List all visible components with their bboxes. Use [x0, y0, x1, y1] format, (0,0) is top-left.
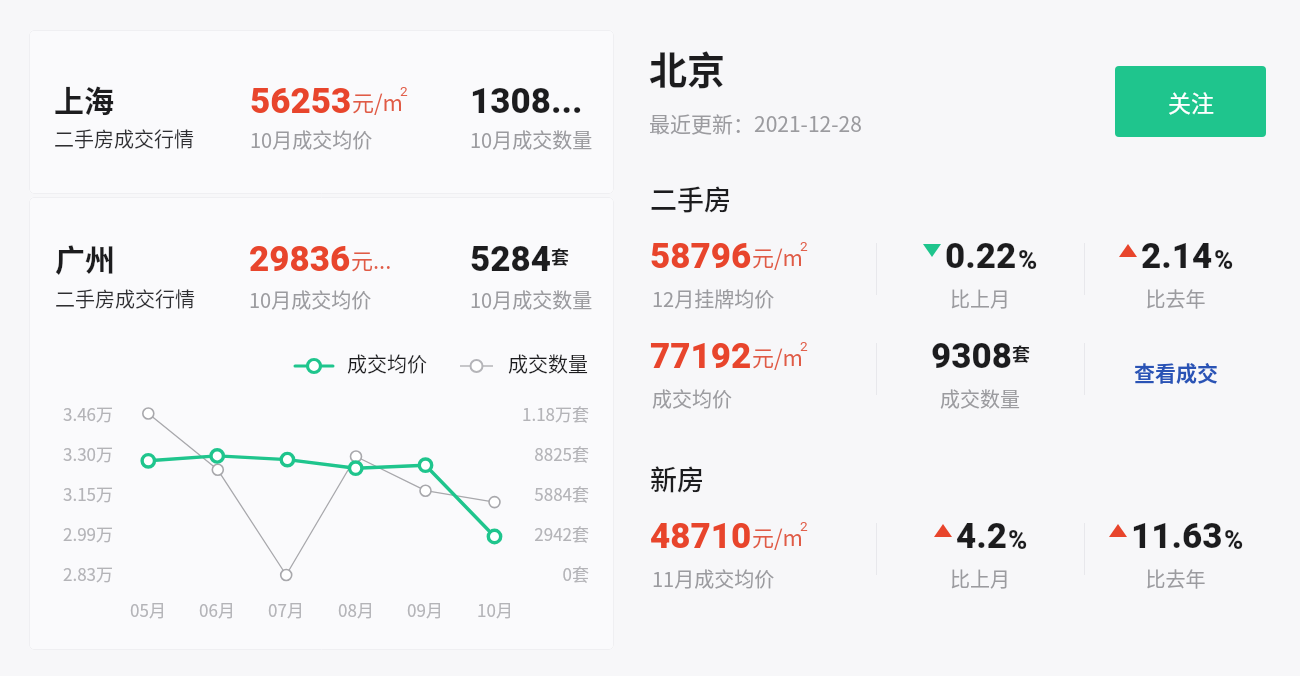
staticText: 二手房	[650, 179, 731, 218]
staticText: 上海	[54, 77, 114, 120]
staticText: 套	[551, 243, 569, 269]
staticText: 10月成交数量	[470, 285, 593, 314]
staticText: 2	[400, 82, 408, 102]
staticText: 12月挂牌均价	[652, 284, 775, 313]
staticText: 比去年	[1084, 284, 1267, 313]
staticText: 成交均价	[347, 349, 427, 378]
staticText: 9308	[931, 331, 1012, 382]
staticText: %	[1008, 522, 1028, 560]
staticText: 比上月	[876, 564, 1084, 593]
button[interactable]: 关注	[1115, 66, 1266, 137]
staticText: 48710	[650, 511, 752, 562]
staticText: 2.14	[1141, 231, 1213, 282]
staticText: 成交数量	[876, 384, 1084, 413]
staticText: 58796	[650, 231, 752, 282]
staticText: 北京	[649, 40, 726, 95]
staticText: 新房	[650, 459, 704, 498]
staticText: 10月	[471, 597, 519, 622]
staticText: 套	[1012, 340, 1030, 366]
staticText: 3.15万	[63, 481, 137, 506]
staticText: 10月成交均价	[250, 125, 373, 154]
staticText: %	[1018, 242, 1038, 280]
staticText: 5284	[470, 234, 551, 285]
staticText: 成交数量	[508, 349, 588, 378]
staticText: 元/m	[752, 340, 803, 372]
staticText: 11月成交均价	[652, 564, 775, 593]
staticText: 3.30万	[63, 441, 137, 466]
staticText: 09月	[401, 597, 449, 622]
staticText: 2	[800, 337, 808, 357]
staticText: 元...	[351, 243, 392, 275]
staticText: 05月	[124, 597, 172, 622]
staticText: 查看成交	[1134, 357, 1218, 387]
staticText: 4.2	[956, 511, 1007, 562]
staticText: %	[1214, 242, 1234, 280]
staticText: 10月成交均价	[249, 285, 372, 314]
staticText: 56253	[250, 76, 352, 127]
staticText: 广州	[55, 236, 115, 279]
staticText: 比上月	[876, 284, 1084, 313]
staticText: 0套	[499, 561, 589, 586]
staticText: 10月成交数量	[470, 125, 593, 154]
button[interactable]	[29, 197, 614, 650]
staticText: 1.18万套	[499, 401, 589, 426]
staticText: 8825套	[499, 441, 589, 466]
staticText: 11.63	[1131, 511, 1223, 562]
staticText: 5884套	[499, 481, 589, 506]
staticText: 成交均价	[652, 384, 732, 413]
staticText: 二手房成交行情	[55, 284, 195, 313]
staticText: 08月	[332, 597, 380, 622]
staticText: 比去年	[1084, 564, 1267, 593]
staticText: 最近更新：2021-12-28	[649, 108, 862, 138]
staticText: 1308...	[470, 76, 583, 127]
staticText: 元/m	[752, 240, 803, 272]
staticText: 77192	[650, 331, 752, 382]
staticText: 29836	[249, 234, 351, 285]
staticText: %	[1224, 522, 1244, 560]
staticText: 元/m	[752, 520, 803, 552]
staticText: 2	[800, 517, 808, 537]
staticText: 2	[800, 237, 808, 257]
button[interactable]: 查看成交	[1134, 357, 1218, 387]
staticText: 06月	[193, 597, 241, 622]
staticText: 关注	[1168, 85, 1214, 118]
staticText: 2.99万	[63, 521, 137, 546]
staticText: 二手房成交行情	[54, 124, 194, 153]
staticText: 0.22	[945, 231, 1017, 282]
staticText: 2942套	[499, 521, 589, 546]
button[interactable]	[29, 30, 614, 194]
staticText: 07月	[262, 597, 310, 622]
staticText: 2.83万	[63, 561, 137, 586]
staticText: 元/m	[352, 85, 403, 117]
staticText: 3.46万	[63, 401, 137, 426]
